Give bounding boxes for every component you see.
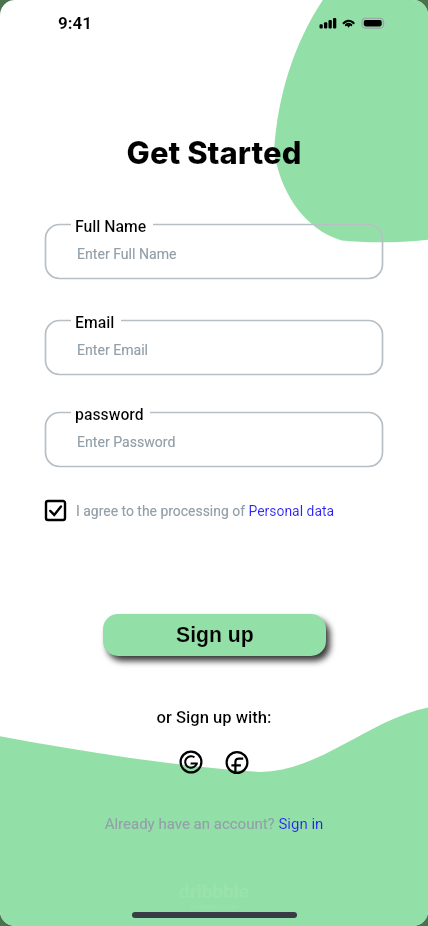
staticText: Sign up	[176, 623, 254, 647]
button[interactable]: Sign up with Facebook	[225, 750, 249, 774]
staticText: I agree to the processing of Personal da…	[76, 503, 335, 519]
staticText: Email	[75, 313, 115, 332]
staticText: Enter Full Name	[77, 246, 177, 263]
staticText: or Sign up with:	[0, 708, 428, 727]
button[interactable]: Sign up	[103, 614, 326, 656]
staticText: 9:41	[58, 13, 93, 33]
button[interactable]: I agree to the processing of Personal da…	[45, 500, 335, 521]
staticText: Enter Email	[77, 342, 149, 359]
staticText: Full Name	[75, 217, 147, 236]
staticText: Enter Password	[77, 434, 176, 451]
staticText: dribbble	[179, 880, 250, 902]
staticText: Get Started	[0, 134, 428, 172]
staticText: password	[75, 405, 144, 424]
staticText: Already have an account? Sign in	[0, 815, 428, 833]
button[interactable]: Sign up with Google	[179, 750, 203, 774]
